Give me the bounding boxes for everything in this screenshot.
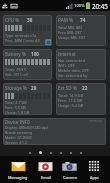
staticText: Mobile data: OFF xyxy=(58,68,89,73)
staticText: Display: 480x800 (240 dpi) xyxy=(5,125,48,130)
staticText: 22 xyxy=(82,85,88,91)
staticText: memory xyxy=(89,119,102,123)
staticText: Storage % xyxy=(5,85,27,91)
staticText: Camera xyxy=(63,175,77,180)
button[interactable]: Camera xyxy=(61,158,78,181)
staticText: 20:45 xyxy=(92,2,108,10)
button[interactable]: Apps xyxy=(86,158,103,181)
staticText: Model: GT-I9300 xyxy=(5,135,32,140)
staticText: Total: 14.9 GB xyxy=(58,93,83,98)
staticText: Free MB: 287 xyxy=(58,30,82,35)
staticText: Usage MB: 597 xyxy=(58,35,86,40)
staticText: RAM % xyxy=(58,17,73,23)
staticText: Free: 11.5 GB xyxy=(58,98,83,103)
staticText: CPU % xyxy=(5,17,20,23)
button[interactable]: Battery % xyxy=(3,49,52,80)
staticText: 100 xyxy=(31,51,39,57)
staticText: Brand: samsung xyxy=(5,130,32,135)
staticText: Temp: 29.8 C xyxy=(5,67,27,72)
staticText: Not connected xyxy=(58,58,85,63)
staticText: Free: 3.3 GB xyxy=(5,105,26,110)
button[interactable]: Internet xyxy=(56,49,106,80)
button[interactable]: Storage % xyxy=(3,83,52,115)
staticText: Internet xyxy=(58,51,76,57)
staticText: Total: 4.7 GB xyxy=(5,100,27,105)
button[interactable]: Email xyxy=(37,158,54,181)
staticText: 38 xyxy=(27,17,33,23)
button[interactable]: Messaging xyxy=(7,158,29,181)
staticText: 74 xyxy=(80,17,86,23)
staticText: Email xyxy=(41,175,51,180)
button[interactable]: CPU % xyxy=(3,15,52,46)
staticText: Volt: 3913 mV xyxy=(5,72,29,77)
staticText: Type: armeabi-v7a xyxy=(5,33,36,38)
staticText: Messaging xyxy=(8,175,28,180)
staticText: Ser: returned by xyxy=(58,73,88,78)
staticText: Usage: 1.8 GB xyxy=(5,110,30,115)
staticText: Total MB: 881 xyxy=(58,25,83,30)
button[interactable]: Ext SD % xyxy=(56,83,106,115)
staticText: Apps xyxy=(90,175,99,180)
button[interactable]: Device INFO xyxy=(3,118,106,145)
staticText: Proc: ARM Cortex-A9 xyxy=(5,38,40,43)
button[interactable]: Refresh xyxy=(46,40,51,45)
staticText: WiFi: OFF xyxy=(58,63,75,68)
staticText: 20 xyxy=(31,85,37,91)
staticText: Battery % xyxy=(5,51,26,57)
staticText: Version: 4.1.2 xyxy=(5,140,28,145)
staticText: Ext SD % xyxy=(58,85,77,91)
staticText: Usage: 3.4 GB xyxy=(58,103,84,108)
staticText: Device INFO xyxy=(5,119,31,125)
staticText: 100% xyxy=(74,3,85,9)
button[interactable]: RAM % xyxy=(56,15,106,46)
